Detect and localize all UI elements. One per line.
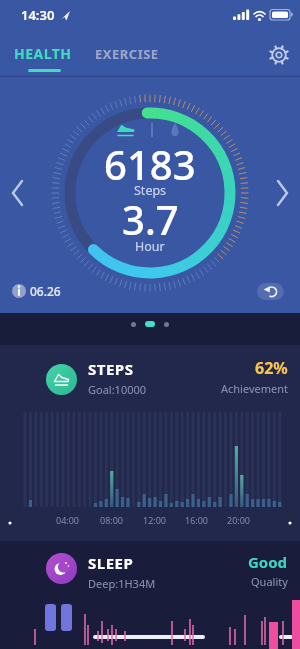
staticText: 04:00 [56,514,80,526]
staticText: 3.7 [122,192,179,246]
button[interactable]: HEALTH [14,44,72,63]
button[interactable] [164,322,169,327]
button[interactable]: STEPS [0,345,300,408]
staticText: Quality [251,574,288,589]
staticText: 14:30 [21,6,55,24]
button[interactable] [270,175,294,211]
button[interactable] [266,42,292,68]
button[interactable] [6,175,30,211]
staticText: SLEEP [88,553,134,573]
staticText: Goal:10000 [88,382,147,397]
staticText: 06.26 [30,283,61,299]
staticText: 12:00 [143,514,167,526]
staticText: EXERCISE [95,45,159,63]
staticText: 62% [255,357,288,379]
button[interactable] [131,322,136,327]
staticText: 16:00 [185,514,209,526]
button[interactable]: EXERCISE [95,45,159,63]
button[interactable]: SLEEP [0,541,300,598]
staticText: HEALTH [14,44,72,63]
staticText: 08:00 [100,514,124,526]
staticText: Steps [134,182,167,199]
staticText: STEPS [88,359,134,379]
staticText: 6183 [104,137,196,191]
staticText: Good [248,552,288,572]
staticText: Achievement [221,381,288,396]
button[interactable] [145,321,155,327]
staticText: Hour [135,238,165,255]
button[interactable] [257,283,284,300]
staticText: Deep:1H34M [88,576,156,591]
staticText: 20:00 [227,514,251,526]
